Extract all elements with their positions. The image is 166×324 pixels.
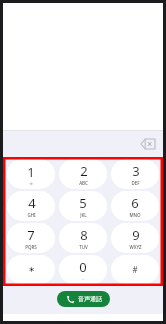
staticText: #: [132, 264, 138, 275]
staticText: JKL: [80, 212, 87, 218]
button[interactable]: 4: [7, 191, 55, 221]
staticText: 4: [28, 194, 36, 212]
staticText: 5: [79, 194, 87, 212]
staticText: MNO: [129, 212, 141, 218]
staticText: ·: [82, 276, 84, 282]
staticText: TUV: [79, 244, 88, 250]
button[interactable]: 2: [59, 159, 107, 189]
staticText: 7: [27, 226, 35, 244]
staticText: GHI: [27, 212, 36, 218]
button[interactable]: Backspace: [138, 134, 158, 154]
staticText: 8: [80, 226, 88, 244]
button[interactable]: 6: [111, 191, 159, 221]
button[interactable]: 3: [111, 159, 159, 189]
button[interactable]: #: [111, 255, 159, 284]
staticText: 0: [79, 258, 87, 276]
button[interactable]: 7: [7, 223, 55, 253]
staticText: 2: [80, 162, 88, 180]
button[interactable]: 1: [7, 159, 55, 189]
button[interactable]: 9: [111, 223, 159, 253]
button[interactable]: ∗: [7, 255, 55, 284]
staticText: 音声通話: [78, 295, 102, 303]
staticText: ABC: [79, 180, 88, 186]
staticText: 3: [132, 162, 140, 180]
button[interactable]: 音声通話: [57, 291, 110, 307]
button[interactable]: 8: [59, 223, 107, 253]
staticText: 9: [132, 226, 140, 244]
staticText: WXYZ: [129, 244, 142, 250]
staticText: DEF: [131, 180, 140, 186]
button[interactable]: 0: [59, 255, 107, 284]
staticText: ∞: [29, 181, 33, 186]
staticText: ∗: [28, 265, 35, 274]
staticText: PQRS: [25, 244, 37, 250]
staticText: 1: [27, 163, 35, 181]
staticText: 6: [131, 194, 139, 212]
button[interactable]: 5: [59, 191, 107, 221]
